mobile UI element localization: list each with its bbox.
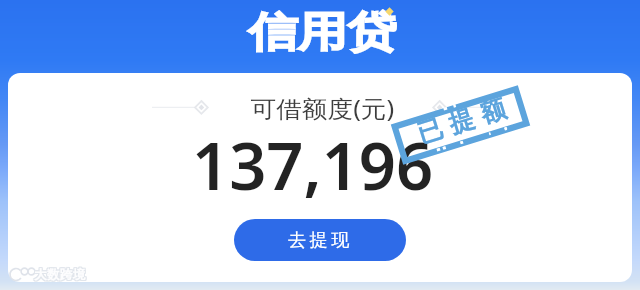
staticText: 大数跨境 xyxy=(35,268,87,284)
staticText: 大数跨境 xyxy=(35,267,87,283)
staticText: 大数跨境 xyxy=(33,266,85,282)
staticText: 已提额 xyxy=(409,92,513,150)
staticText: 大数跨境 xyxy=(34,268,86,284)
staticText: 大数跨境 xyxy=(34,266,86,282)
staticText: 大数跨境 xyxy=(33,268,85,284)
staticText: 大数跨境 xyxy=(35,266,87,282)
staticText: 可借额度(元) xyxy=(251,92,394,123)
staticText: 大数跨境 xyxy=(33,267,85,283)
staticText: 去提现 xyxy=(288,229,353,252)
staticText: 信用贷 xyxy=(248,7,397,59)
staticText: 大数跨境 xyxy=(34,267,86,283)
button[interactable]: 去提现 xyxy=(234,219,406,261)
staticText: 137,196 xyxy=(192,121,434,210)
